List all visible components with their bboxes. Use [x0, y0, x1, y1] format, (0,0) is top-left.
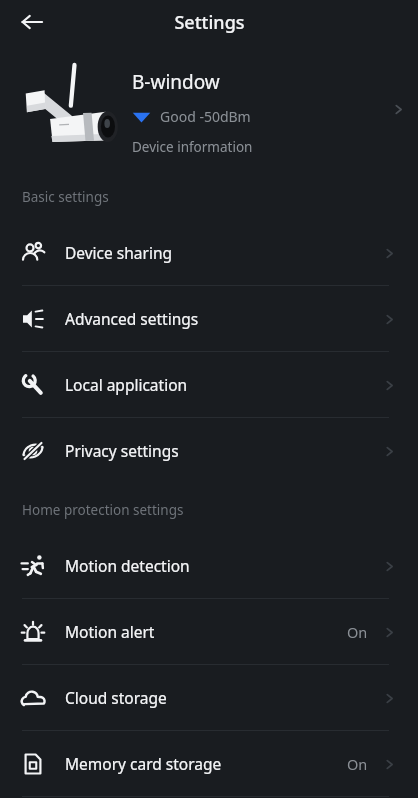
- button[interactable]: Motion alert: [0, 599, 418, 664]
- staticText: Advanced settings: [65, 308, 382, 329]
- button[interactable]: Device sharing: [0, 220, 418, 285]
- staticText: Cloud storage: [65, 687, 382, 708]
- staticText: Basic settings: [22, 188, 109, 206]
- staticText: Local application: [65, 374, 382, 395]
- button[interactable]: Advanced settings: [0, 286, 418, 351]
- staticText: Good -50dBm: [160, 107, 251, 126]
- staticText: Memory card storage: [65, 753, 347, 774]
- staticText: Settings: [174, 10, 245, 35]
- staticText: Privacy settings: [65, 440, 382, 461]
- button[interactable]: Local application: [0, 352, 418, 417]
- staticText: Device information: [132, 138, 253, 156]
- staticText: B-window: [132, 69, 220, 95]
- staticText: Device sharing: [65, 242, 382, 263]
- button[interactable]: Back: [12, 2, 52, 42]
- staticText: Motion alert: [65, 621, 347, 642]
- button[interactable]: Motion detection: [0, 533, 418, 598]
- staticText: On: [347, 754, 368, 774]
- button[interactable]: Memory card storage: [0, 731, 418, 796]
- staticText: On: [347, 622, 368, 642]
- button[interactable]: Privacy settings: [0, 418, 418, 483]
- button[interactable]: B-window: [0, 44, 418, 174]
- staticText: Home protection settings: [22, 501, 184, 519]
- staticText: Motion detection: [65, 555, 382, 576]
- button[interactable]: Cloud storage: [0, 665, 418, 730]
